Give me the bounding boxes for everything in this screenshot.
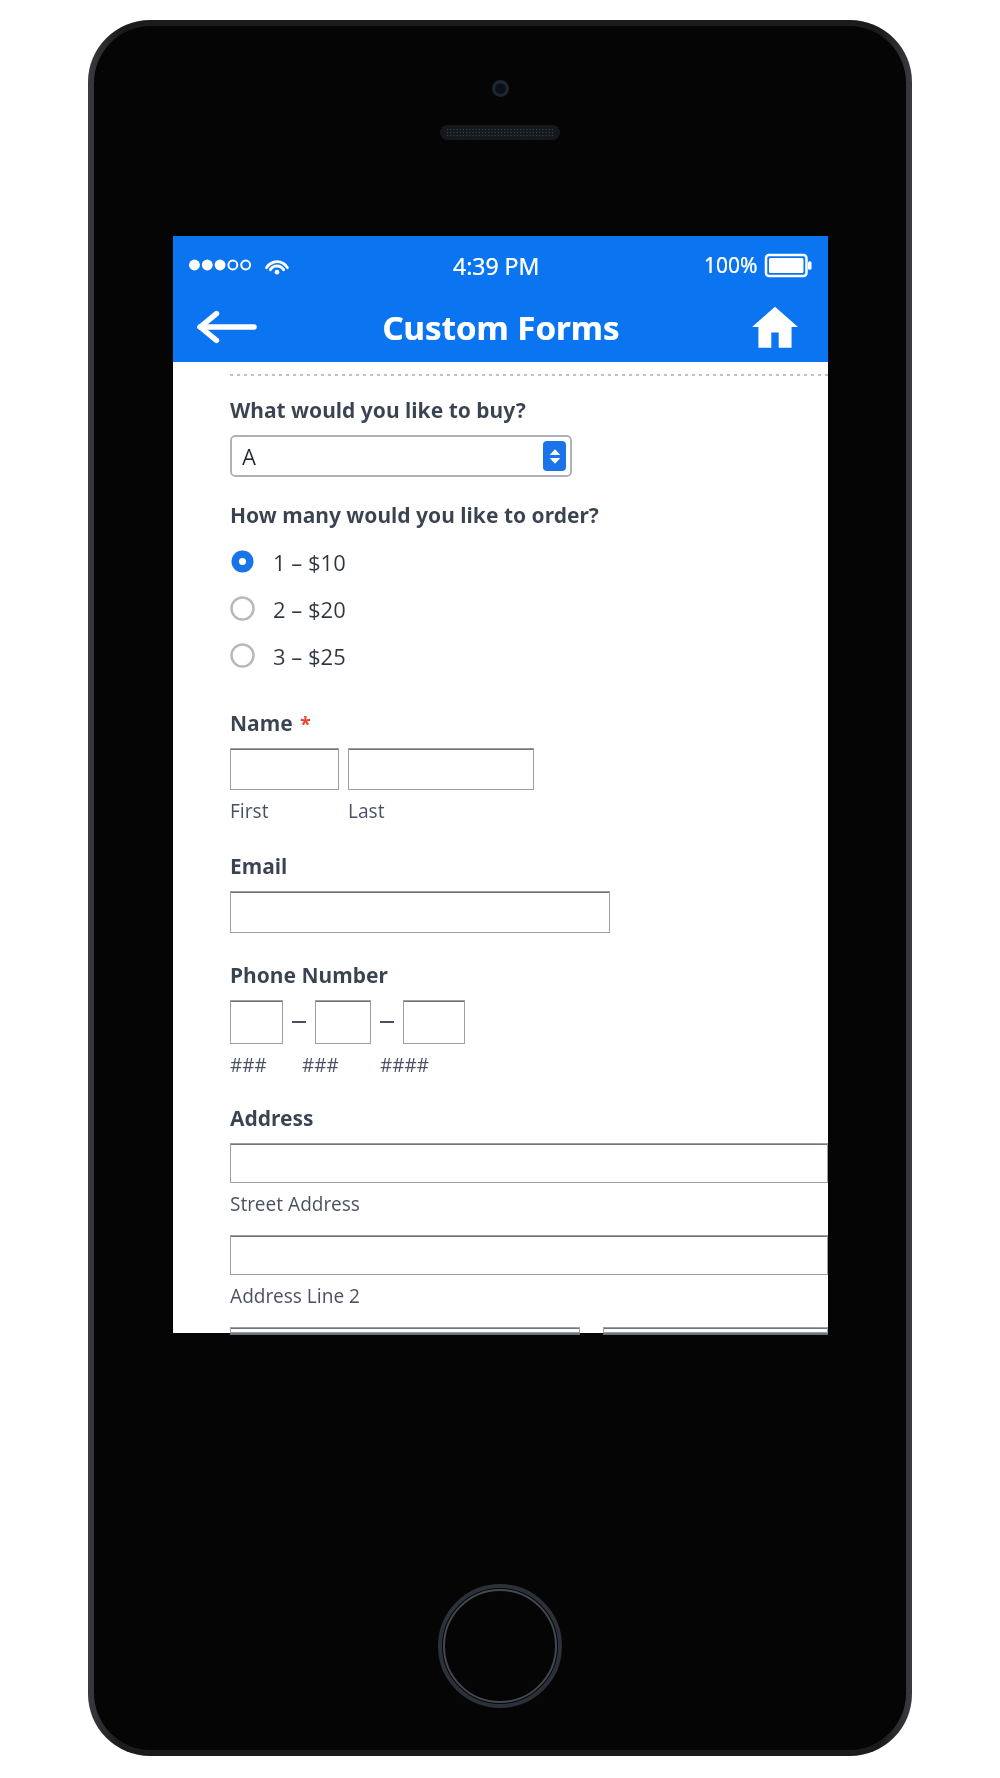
staticText: Name	[230, 709, 293, 738]
staticText: Custom Forms	[382, 305, 620, 350]
staticText: Address	[230, 1104, 314, 1133]
button[interactable]: Back	[191, 299, 261, 355]
staticText: *	[300, 710, 311, 737]
button[interactable]	[230, 1000, 283, 1044]
staticText: 4:39 PM	[453, 250, 540, 281]
staticText: Street Address	[230, 1191, 360, 1217]
button[interactable]: Home	[740, 299, 810, 355]
staticText: Address Line 2	[230, 1283, 360, 1309]
button[interactable]	[348, 748, 534, 790]
staticText: 2 – $20	[273, 594, 346, 624]
button[interactable]	[603, 1327, 828, 1333]
button[interactable]	[315, 1000, 371, 1044]
button[interactable]	[230, 748, 339, 790]
staticText: How many would you like to order?	[230, 501, 599, 530]
button[interactable]: Home button	[438, 1584, 562, 1708]
staticText: ###	[230, 1052, 267, 1078]
staticText: Phone Number	[230, 961, 388, 990]
staticText: 1 – $10	[273, 547, 346, 577]
button[interactable]	[403, 1000, 465, 1044]
button[interactable]: 2 – $20	[230, 585, 480, 632]
staticText: ###	[302, 1052, 339, 1078]
staticText: First	[230, 798, 269, 824]
button[interactable]	[230, 1235, 828, 1275]
staticText: A	[242, 441, 257, 471]
button[interactable]: A	[230, 435, 572, 477]
staticText: Last	[348, 798, 385, 824]
button[interactable]	[230, 1143, 828, 1183]
staticText: ####	[380, 1052, 430, 1078]
staticText: 100%	[704, 251, 758, 280]
button[interactable]: 3 – $25	[230, 632, 480, 679]
staticText: What would you like to buy?	[230, 396, 526, 425]
button[interactable]	[230, 891, 610, 933]
button[interactable]	[230, 1327, 580, 1333]
button[interactable]: 1 – $10	[230, 538, 480, 585]
staticText: 3 – $25	[273, 641, 346, 671]
staticText: Email	[230, 852, 288, 881]
